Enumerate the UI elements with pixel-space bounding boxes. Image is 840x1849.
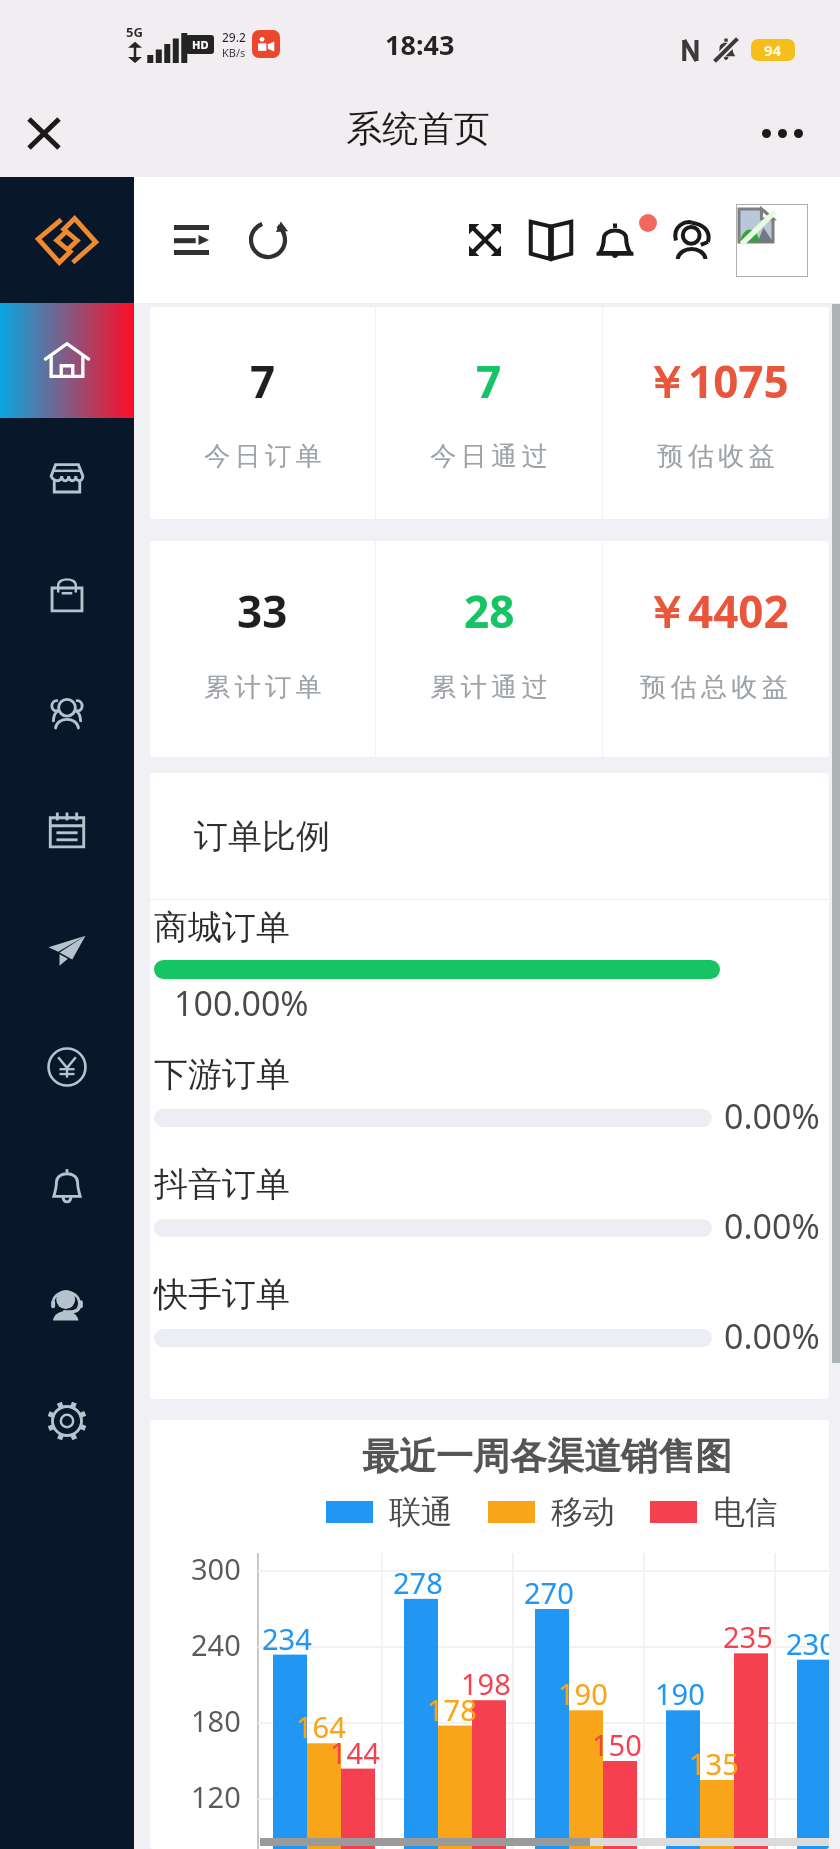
- button[interactable]: Finance: [0, 1008, 134, 1126]
- staticText: ￥4402: [644, 581, 789, 641]
- staticText: 180: [191, 1701, 241, 1740]
- button[interactable]: ￥4402: [603, 541, 829, 757]
- staticText: 33: [237, 581, 288, 641]
- staticText: 快手订单: [154, 1273, 290, 1316]
- staticText: 94: [764, 40, 782, 60]
- staticText: ￥1075: [644, 351, 789, 411]
- button[interactable]: Fullscreen: [456, 177, 514, 303]
- staticText: 预估总收益: [640, 671, 793, 704]
- staticText: 预估收益: [655, 440, 777, 473]
- staticText: 150: [592, 1725, 642, 1764]
- staticText: 联通: [389, 1492, 453, 1532]
- button[interactable]: Close: [13, 102, 75, 164]
- button[interactable]: 28: [376, 541, 602, 757]
- staticText: 190: [558, 1674, 608, 1713]
- staticText: 订单比例: [194, 815, 330, 858]
- staticText: 0.00%: [724, 1313, 820, 1359]
- button[interactable]: Home: [0, 303, 134, 418]
- button[interactable]: 33: [150, 541, 375, 757]
- staticText: 0.00%: [724, 1093, 820, 1139]
- staticText: 164: [296, 1707, 346, 1746]
- button[interactable]: Notifications: [586, 177, 644, 303]
- staticText: 28: [464, 581, 515, 641]
- staticText: 234: [262, 1619, 312, 1658]
- staticText: 120: [191, 1777, 241, 1816]
- staticText: 移动: [551, 1492, 615, 1532]
- staticText: 190: [655, 1674, 705, 1713]
- staticText: 5G: [126, 23, 143, 41]
- staticText: 270: [524, 1573, 574, 1612]
- staticText: 144: [330, 1733, 380, 1772]
- button[interactable]: Notices: [0, 1126, 134, 1244]
- staticText: 最近一周各渠道销售图: [362, 1433, 732, 1480]
- button[interactable]: Refresh: [239, 177, 297, 303]
- button[interactable]: ￥1075: [603, 307, 829, 519]
- button[interactable]: Members: [0, 654, 134, 772]
- staticText: 累计通过: [428, 671, 550, 704]
- staticText: HD: [192, 37, 209, 52]
- button[interactable]: 7: [376, 307, 602, 519]
- staticText: 今日通过: [428, 440, 550, 473]
- staticText: 198: [461, 1664, 511, 1703]
- button[interactable]: 快手订单: [150, 1269, 829, 1379]
- button[interactable]: 下游订单: [150, 1049, 829, 1159]
- staticText: 下游订单: [154, 1053, 290, 1096]
- staticText: 电信: [713, 1492, 777, 1532]
- button[interactable]: Shopping bag: [0, 536, 134, 654]
- staticText: KB/s: [222, 45, 246, 60]
- staticText: 278: [393, 1563, 443, 1602]
- button[interactable]: 商城订单: [150, 900, 829, 1049]
- staticText: 240: [191, 1625, 241, 1664]
- staticText: 100.00%: [174, 980, 309, 1026]
- button[interactable]: Promote: [0, 890, 134, 1008]
- staticText: 18:43: [385, 26, 455, 63]
- button[interactable]: Guide: [522, 177, 580, 303]
- staticText: 7: [250, 351, 276, 411]
- button[interactable]: Avatar: [736, 204, 808, 277]
- button[interactable]: Customer service: [663, 177, 721, 303]
- staticText: 300: [191, 1549, 241, 1588]
- button[interactable]: Settings: [0, 1362, 134, 1480]
- staticText: 29.2: [222, 29, 246, 45]
- button[interactable]: 抖音订单: [150, 1159, 829, 1269]
- button[interactable]: Support: [0, 1244, 134, 1362]
- staticText: 今日订单: [202, 440, 324, 473]
- staticText: 230: [786, 1624, 829, 1663]
- staticText: 135: [689, 1744, 739, 1783]
- button[interactable]: 7: [150, 307, 375, 519]
- button[interactable]: Store: [0, 418, 134, 536]
- staticText: 商城订单: [154, 906, 290, 949]
- staticText: 累计订单: [202, 671, 324, 704]
- button[interactable]: More options: [751, 102, 813, 164]
- button[interactable]: Menu: [162, 177, 220, 303]
- staticText: 系统首页: [346, 106, 490, 151]
- staticText: 235: [723, 1617, 773, 1656]
- staticText: 0.00%: [724, 1203, 820, 1249]
- button[interactable]: Orders: [0, 772, 134, 890]
- staticText: 178: [427, 1690, 477, 1729]
- staticText: 7: [476, 351, 502, 411]
- staticText: 抖音订单: [154, 1163, 290, 1206]
